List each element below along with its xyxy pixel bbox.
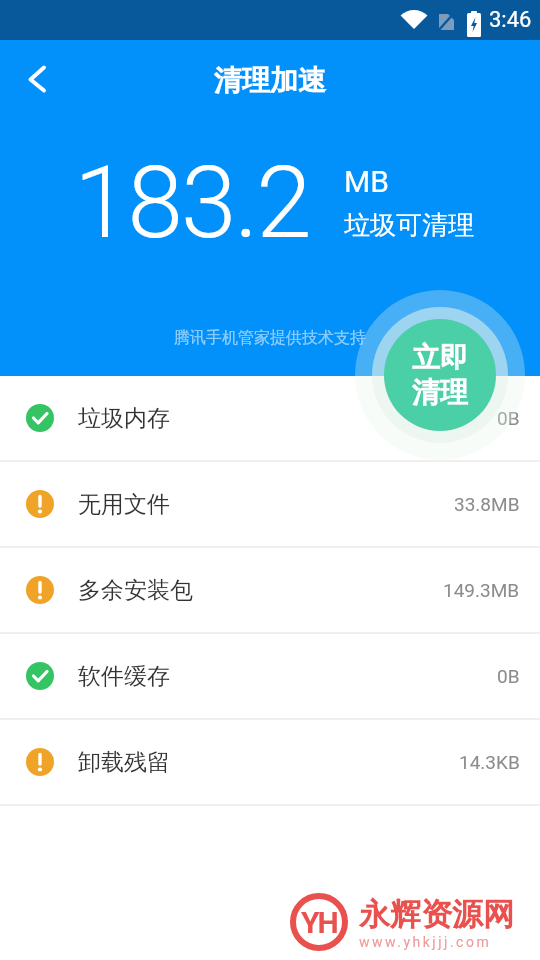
staticText: YH [301, 905, 337, 940]
staticText: 183.2 [74, 144, 310, 261]
staticText: www.yhkjjj.com [359, 934, 492, 950]
staticText: 0B [497, 665, 520, 687]
staticText: 立即 清理 [412, 340, 468, 410]
staticText: 无用文件 [78, 490, 170, 519]
staticText: 14.3KB [459, 751, 520, 773]
button[interactable]: 多余安装包 [0, 548, 540, 634]
button[interactable]: 立即 清理 [384, 319, 496, 431]
staticText: 149.3MB [443, 579, 520, 601]
button[interactable]: 垃圾内存 [0, 376, 540, 462]
button[interactable] [0, 48, 64, 112]
staticText: 0B [497, 407, 520, 429]
staticText: 卸载残留 [78, 748, 170, 777]
button[interactable]: 软件缓存 [0, 634, 540, 720]
staticText: 多余安装包 [78, 576, 193, 605]
staticText: 垃圾可清理 [344, 209, 474, 242]
staticText: 永辉资源网 [359, 895, 514, 934]
staticText: MB [344, 164, 389, 199]
staticText: 33.8MB [454, 493, 520, 515]
staticText: 垃圾内存 [78, 404, 170, 433]
button[interactable]: 无用文件 [0, 462, 540, 548]
staticText: 清理加速 [214, 63, 326, 98]
staticText: 软件缓存 [78, 662, 170, 691]
staticText: 3:46 [489, 7, 532, 33]
button[interactable]: 卸载残留 [0, 720, 540, 806]
staticText: 腾讯手机管家提供技术支持 [174, 328, 366, 348]
